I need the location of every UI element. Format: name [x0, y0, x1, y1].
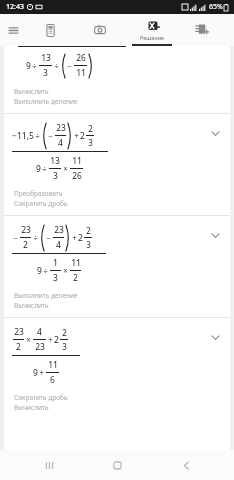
staticText: 2	[78, 232, 83, 244]
staticText: 11	[72, 155, 82, 167]
staticText: −	[48, 130, 53, 141]
button[interactable]: Expand	[206, 328, 224, 346]
staticText: ×	[63, 163, 68, 174]
staticText: Сократить дробь	[14, 393, 68, 402]
button[interactable]: Expand	[206, 124, 224, 142]
button[interactable]: Решение	[126, 14, 178, 46]
button[interactable]: Back	[166, 450, 206, 480]
staticText: ÷	[33, 232, 38, 243]
staticText: 9	[33, 367, 38, 379]
staticText: 2	[16, 341, 21, 353]
staticText: Вычислить	[14, 87, 49, 96]
staticText: 26	[72, 170, 82, 182]
staticText: 23	[54, 224, 64, 236]
staticText: 3	[62, 341, 67, 352]
staticText: Преобразовать	[14, 189, 63, 198]
staticText: Вычислить	[14, 403, 49, 412]
staticText: −	[67, 60, 72, 71]
staticText: 11	[71, 257, 81, 269]
staticText: ÷	[42, 163, 47, 174]
button[interactable]: Expand	[206, 226, 224, 244]
staticText: +	[72, 232, 77, 243]
staticText: ÷	[43, 265, 48, 276]
button[interactable]: −11,5	[4, 114, 230, 215]
staticText: 9	[37, 265, 42, 277]
staticText: 2	[88, 123, 93, 134]
staticText: ÷	[54, 60, 59, 71]
staticText: −	[13, 232, 18, 243]
staticText: 65%	[209, 2, 223, 12]
staticText: Сократить дробь	[14, 199, 68, 208]
staticText: 2	[80, 130, 85, 142]
staticText: 23	[21, 224, 31, 236]
button[interactable]: Recents	[29, 450, 69, 480]
button[interactable]: Camera	[74, 14, 126, 46]
staticText: ÷	[32, 60, 37, 71]
staticText: 4	[37, 326, 42, 338]
button[interactable]: Notebook	[178, 14, 226, 46]
staticText: 9	[36, 163, 41, 175]
staticText: 2	[23, 239, 28, 251]
staticText: 3	[88, 137, 93, 148]
staticText: 4	[58, 137, 63, 149]
staticText: −11,5	[12, 130, 34, 142]
staticText: 2	[62, 327, 67, 338]
button[interactable]: 23	[4, 318, 230, 419]
staticText: 2	[73, 272, 78, 284]
staticText: 1	[53, 257, 58, 269]
staticText: +	[48, 334, 53, 345]
staticText: ÷	[35, 130, 40, 141]
staticText: +	[74, 130, 79, 141]
staticText: Выполнить деление	[14, 291, 78, 300]
staticText: 3	[53, 272, 58, 284]
staticText: 2	[54, 334, 59, 346]
staticText: 2	[86, 225, 91, 236]
staticText: 12:43	[6, 2, 24, 12]
staticText: 11	[76, 67, 86, 79]
staticText: Выполнить деление	[14, 97, 78, 106]
button[interactable]: Menu	[0, 14, 26, 46]
staticText: Решение	[140, 34, 165, 41]
staticText: 13	[50, 155, 60, 167]
staticText: +	[39, 367, 44, 378]
staticText: 23	[14, 326, 24, 338]
staticText: 11	[48, 359, 58, 371]
staticText: 23	[56, 122, 66, 134]
staticText: 13	[41, 52, 51, 64]
button[interactable]: Calculator	[26, 14, 74, 46]
button[interactable]: Home	[97, 450, 137, 480]
staticText: 9	[26, 60, 31, 72]
button[interactable]: 9	[4, 46, 230, 113]
staticText: −	[46, 232, 51, 243]
staticText: 4	[56, 239, 61, 251]
staticText: 26	[76, 52, 86, 64]
staticText: 23	[35, 341, 45, 353]
staticText: 3	[43, 67, 48, 79]
button[interactable]: −	[4, 216, 230, 317]
staticText: 3	[86, 239, 91, 250]
staticText: 6	[50, 374, 55, 386]
staticText: ×	[63, 265, 68, 276]
staticText: Вычислить	[14, 301, 49, 310]
staticText: ×	[26, 334, 31, 345]
staticText: 3	[53, 170, 58, 182]
